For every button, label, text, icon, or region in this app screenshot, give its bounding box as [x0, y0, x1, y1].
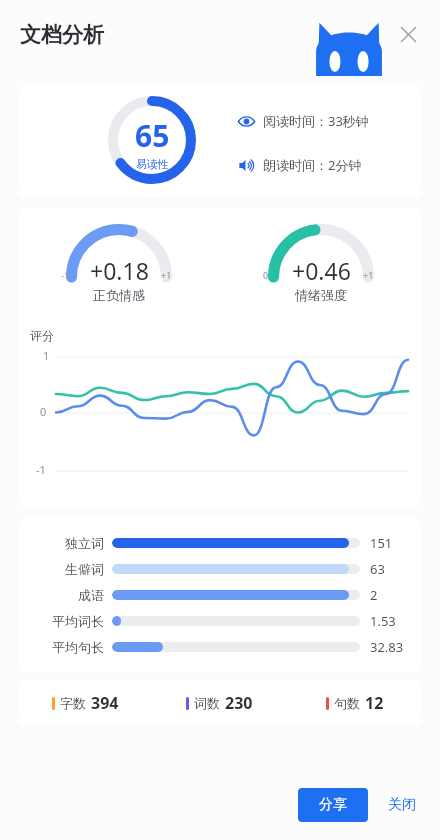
staticText: 生僻词 [65, 561, 104, 577]
staticText: 平均词长 [52, 613, 104, 629]
staticText: 1 [43, 348, 50, 363]
staticText: 1.53 [370, 612, 396, 630]
staticText: 文档分析 [20, 22, 104, 48]
staticText: 65 [135, 115, 170, 156]
staticText: 32.83 [370, 638, 404, 656]
staticText: 易读性 [136, 157, 169, 171]
staticText: 评分 [30, 328, 54, 343]
staticText: 正负情感 [93, 287, 145, 303]
button[interactable]: 成语 [18, 582, 422, 608]
staticText: 230 [225, 692, 253, 714]
button[interactable]: 平均词长 [18, 608, 422, 634]
staticText: 关闭 [388, 796, 416, 814]
staticText: -1 [36, 462, 46, 477]
staticText: 394 [91, 692, 119, 714]
button[interactable]: 关闭 [388, 788, 416, 822]
staticText: +1 [363, 269, 374, 281]
button[interactable]: 生僻词 [18, 556, 422, 582]
staticText: 0 [40, 404, 47, 419]
staticText: +1 [161, 269, 172, 281]
staticText: 平均句长 [52, 639, 104, 655]
button[interactable]: 分享 [298, 788, 368, 822]
button[interactable]: 关闭 [390, 16, 426, 52]
staticText: +0.46 [292, 255, 351, 286]
staticText: 151 [370, 534, 393, 552]
staticText: 12 [365, 692, 384, 714]
button[interactable]: 独立词 [18, 530, 422, 556]
staticText: 句数 [334, 695, 360, 711]
staticText: -1 [61, 269, 70, 281]
staticText: +0.18 [90, 255, 149, 286]
staticText: 字数 [60, 695, 86, 711]
staticText: 分享 [319, 796, 347, 814]
staticText: 63 [370, 560, 385, 578]
staticText: 成语 [78, 587, 104, 603]
button[interactable]: 平均句长 [18, 634, 422, 660]
staticText: 0 [263, 269, 269, 281]
staticText: 阅读时间：33秒钟 [263, 112, 369, 130]
staticText: 情绪强度 [295, 287, 347, 303]
staticText: 2 [370, 586, 378, 604]
staticText: 朗读时间：2分钟 [263, 156, 362, 174]
staticText: 独立词 [65, 535, 104, 551]
staticText: 词数 [194, 695, 220, 711]
